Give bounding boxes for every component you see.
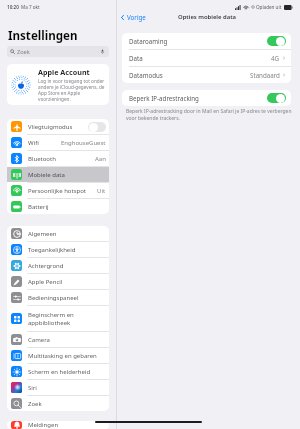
button[interactable]: Beginscherm en appbibliotheek [7, 306, 109, 331]
button[interactable]: Camera [7, 332, 109, 347]
button[interactable]: Beperk IP-adrestracking [122, 90, 291, 106]
staticText: Ma 7 okt [21, 4, 40, 10]
button[interactable]: Algemeen [7, 226, 109, 241]
staticText: Dataroaming [129, 37, 267, 45]
staticText: Bedieningspaneel [28, 294, 106, 302]
button[interactable]: Scherm en helderheid [7, 364, 109, 379]
staticText: Uit [97, 187, 106, 195]
button[interactable]: Mobiele data [7, 167, 109, 182]
staticText: 10:20 [7, 4, 19, 10]
staticText: Algemeen [28, 230, 106, 238]
staticText: Multitasking en gebaren [28, 352, 106, 360]
button[interactable]: Apple Account [7, 64, 109, 105]
staticText: Apple Account [38, 67, 90, 77]
button[interactable]: Persoonlijke hotspot [7, 183, 109, 198]
button[interactable]: Datamodus [122, 67, 291, 83]
staticText: EnghouseGuest [61, 139, 106, 147]
button[interactable]: Data [122, 50, 291, 66]
staticText: Beperk IP-adrestracking [129, 94, 267, 102]
button[interactable]: Vorige [117, 13, 150, 21]
staticText: Opties mobiele data [178, 13, 236, 21]
staticText: 4G [271, 54, 280, 62]
button[interactable]: Bluetooth [7, 151, 109, 166]
button[interactable]: Bedieningspaneel [7, 290, 109, 305]
staticText: Achtergrond [28, 262, 106, 270]
button[interactable]: Vliegtuigmodus [7, 119, 109, 134]
button[interactable]: Achtergrond [7, 258, 109, 273]
button[interactable]: Toegankelijkheid [7, 242, 109, 257]
button[interactable]: Siri [7, 380, 109, 395]
staticText: Vliegtuigmodus [28, 123, 88, 131]
staticText: Zoek [17, 48, 30, 56]
staticText: Beperk IP-adrestracking door in Mail en … [126, 108, 292, 122]
button[interactable]: Zoek [7, 396, 109, 411]
staticText: Datamodus [129, 71, 250, 79]
staticText: Siri [28, 384, 106, 392]
button[interactable]: Meldingen [7, 421, 109, 429]
staticText: Apple Pencil [28, 278, 106, 286]
staticText: Log in voor toegang tot onder andere je … [38, 78, 105, 102]
staticText: Meldingen [28, 421, 106, 429]
staticText: Aan [95, 155, 106, 163]
button[interactable]: Batterij [7, 199, 109, 214]
staticText: Data [129, 54, 271, 62]
staticText: Toegankelijkheid [28, 246, 106, 254]
staticText: Beginscherm en appbibliotheek [28, 311, 106, 327]
staticText: Wifi [28, 139, 61, 147]
staticText: Zoek [28, 400, 106, 408]
staticText: Instellingen [8, 28, 78, 44]
staticText: Vorige [127, 13, 146, 21]
button[interactable]: Multitasking en gebaren [7, 348, 109, 363]
staticText: Persoonlijke hotspot [28, 187, 97, 195]
button[interactable]: Apple Pencil [7, 274, 109, 289]
staticText: Scherm en helderheid [28, 368, 106, 376]
staticText: Standaard [250, 71, 280, 79]
staticText: Mobiele data [28, 171, 106, 179]
staticText: Opladen uit [256, 4, 282, 10]
staticText: Camera [28, 336, 106, 344]
button[interactable]: Dataroaming [122, 33, 291, 49]
staticText: Bluetooth [28, 155, 95, 163]
staticText: Batterij [28, 203, 106, 211]
button[interactable]: Zoek [7, 46, 109, 57]
button[interactable]: Wifi [7, 135, 109, 150]
